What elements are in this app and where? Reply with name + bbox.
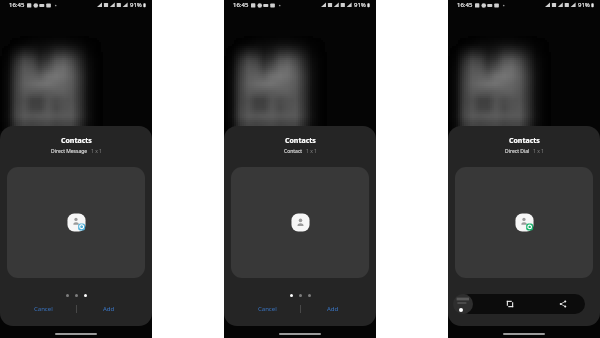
button[interactable]: Screenshot preview — [453, 294, 473, 314]
button[interactable]: Share screenshot — [555, 296, 571, 312]
button[interactable]: Add — [309, 302, 357, 316]
staticText: Contacts — [61, 136, 92, 146]
staticText: 1 x 1 — [533, 148, 544, 155]
staticText: Contact — [284, 148, 303, 155]
staticText: 16:45 — [233, 1, 249, 9]
staticText: Add — [103, 305, 115, 313]
staticText: Direct Message — [51, 148, 88, 155]
button[interactable]: Edit screenshot — [502, 296, 518, 312]
staticText: Direct Dial — [505, 148, 530, 155]
button[interactable]: Cancel — [243, 302, 291, 316]
button[interactable]: Cancel — [19, 302, 67, 316]
staticText: Cancel — [258, 305, 277, 313]
staticText: Contacts — [285, 136, 316, 146]
staticText: 91% — [578, 1, 590, 9]
button[interactable]: Cancel — [467, 302, 515, 316]
staticText: Contacts — [509, 136, 540, 146]
staticText: 16:45 — [457, 1, 473, 9]
staticText: 1 x 1 — [306, 148, 317, 155]
staticText: Add — [551, 305, 563, 313]
staticText: 91% — [130, 1, 142, 9]
staticText: 91% — [354, 1, 366, 9]
button[interactable]: Add — [533, 302, 581, 316]
staticText: Add — [327, 305, 339, 313]
staticText: Cancel — [34, 305, 53, 313]
staticText: 16:45 — [9, 1, 25, 9]
button[interactable]: Add — [85, 302, 133, 316]
staticText: 1 x 1 — [91, 148, 102, 155]
